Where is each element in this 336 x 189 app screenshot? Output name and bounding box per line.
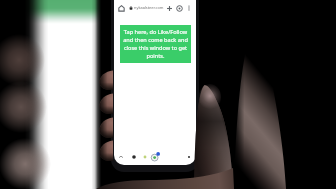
button[interactable]: Recent app two [142, 154, 148, 160]
staticText: Tap here, do Like/Follow and then come b… [120, 28, 191, 60]
button[interactable]: Tap here, do Like/Follow and then come b… [120, 25, 191, 63]
staticText: nykaalsteer.com [134, 5, 164, 10]
button[interactable]: More options [186, 5, 192, 11]
button[interactable]: Home [118, 5, 125, 12]
button[interactable]: Collapse [118, 154, 124, 160]
button[interactable]: Account [176, 5, 183, 12]
button[interactable]: nykaalsteer.com [134, 5, 164, 12]
button[interactable]: Apps [186, 154, 192, 160]
button[interactable]: Chrome [150, 151, 161, 162]
button[interactable]: New tab [166, 5, 173, 12]
button[interactable]: Recent app [131, 154, 137, 160]
